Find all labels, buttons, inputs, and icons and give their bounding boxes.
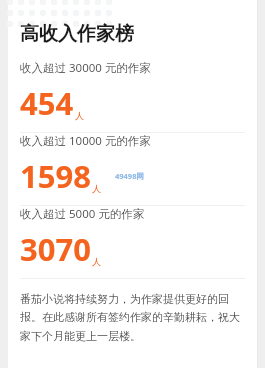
- staticText: 人: [75, 110, 84, 121]
- staticText: 人: [92, 256, 101, 267]
- staticText: 3070: [20, 228, 91, 270]
- staticText: 收入超过 30000 元的作家: [20, 60, 151, 76]
- staticText: 454: [20, 82, 74, 124]
- staticText: 高收入作家榜: [20, 22, 134, 46]
- staticText: 番茄小说将持续努力，为作家提供更好的回报。在此感谢所有签约作家的辛勤耕耘，祝大家…: [20, 292, 243, 343]
- staticText: 人: [92, 183, 101, 194]
- staticText: 收入超过 10000 元的作家: [20, 133, 151, 149]
- staticText: 1598: [20, 155, 91, 197]
- staticText: 49498网: [115, 171, 144, 181]
- staticText: 收入超过 5000 元的作家: [20, 206, 145, 222]
